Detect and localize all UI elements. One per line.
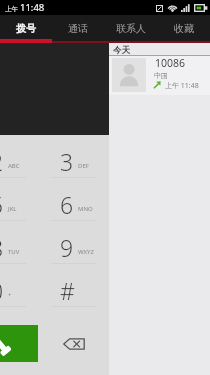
- staticText: MNO: [78, 205, 93, 213]
- button[interactable]: #: [38, 264, 108, 307]
- staticText: #: [60, 275, 75, 306]
- button[interactable]: 联系人: [104, 15, 157, 39]
- staticText: +: [8, 291, 12, 299]
- staticText: 拨号: [16, 22, 36, 35]
- staticText: 10086: [155, 56, 186, 70]
- button[interactable]: 6: [38, 178, 108, 221]
- button[interactable]: 5: [0, 178, 38, 221]
- staticText: 上午: [5, 5, 18, 13]
- button[interactable]: 拨号: [0, 15, 52, 39]
- staticText: WXYZ: [78, 248, 94, 256]
- staticText: 8: [0, 232, 4, 263]
- staticText: 通话: [68, 22, 88, 35]
- button[interactable]: 9: [38, 221, 108, 264]
- staticText: 上午 11:48: [165, 81, 199, 91]
- staticText: 联系人: [116, 22, 146, 35]
- staticText: ABC: [8, 162, 20, 170]
- button[interactable]: 10086: [109, 56, 210, 95]
- button[interactable]: Delete: [38, 325, 109, 362]
- button[interactable]: 3: [38, 135, 108, 178]
- staticText: JKL: [8, 205, 17, 213]
- button[interactable]: Call: [0, 325, 38, 362]
- staticText: 6: [60, 189, 74, 220]
- button[interactable]: 收藏: [157, 15, 210, 39]
- staticText: 3: [60, 146, 74, 177]
- staticText: TUV: [8, 248, 20, 256]
- staticText: 9: [60, 232, 74, 263]
- button[interactable]: 8: [0, 221, 38, 264]
- button[interactable]: 2: [0, 135, 38, 178]
- staticText: 0: [0, 275, 4, 306]
- staticText: 今天: [113, 45, 130, 56]
- staticText: 2: [0, 146, 4, 177]
- staticText: 收藏: [174, 22, 194, 35]
- button[interactable]: 通话: [52, 15, 104, 39]
- staticText: 5: [0, 189, 4, 220]
- staticText: 中国: [154, 71, 168, 80]
- staticText: DEF: [78, 162, 89, 170]
- button[interactable]: 0: [0, 264, 38, 307]
- staticText: 11:48: [20, 1, 45, 14]
